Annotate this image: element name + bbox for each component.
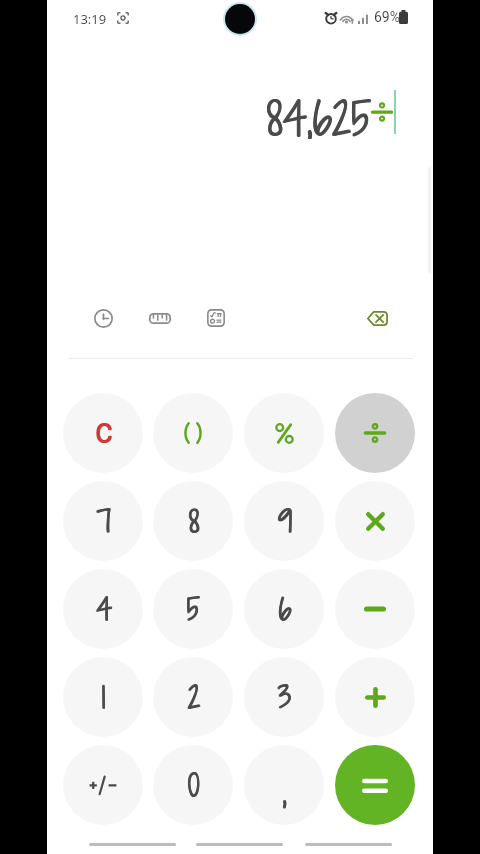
staticText: ,	[283, 771, 287, 815]
staticText: 9	[278, 501, 293, 543]
staticText: 3	[278, 677, 292, 719]
staticText: 5	[186, 588, 200, 630]
staticText: 4	[96, 588, 113, 630]
button[interactable]: Zero	[153, 745, 233, 825]
staticText: 13:19	[73, 10, 107, 28]
staticText: 9	[278, 500, 293, 542]
button[interactable]: Minus	[335, 569, 415, 649]
staticText: 1	[101, 676, 105, 718]
staticText: 84,625	[266, 87, 371, 139]
staticText: 8	[188, 500, 199, 542]
staticText: C	[96, 418, 113, 448]
staticText: 3	[277, 676, 291, 718]
button[interactable]: Equals	[335, 745, 415, 825]
staticText: 0	[188, 765, 200, 807]
button[interactable]: Unit converter	[138, 296, 182, 340]
button[interactable]: Multiply	[335, 481, 415, 561]
staticText: 5	[187, 588, 201, 630]
staticText: C	[95, 418, 112, 448]
button[interactable]: Backspace	[353, 294, 401, 342]
button[interactable]: Divide	[335, 393, 415, 473]
staticText: 2	[188, 676, 201, 718]
button[interactable]: Scientific calculator	[194, 296, 238, 340]
staticText: 1	[102, 677, 106, 719]
staticText: 8	[189, 501, 200, 543]
button[interactable]: One	[63, 657, 143, 737]
button[interactable]: Clear	[63, 393, 143, 473]
staticText: 5	[186, 589, 200, 631]
button[interactable]: Five	[153, 569, 233, 649]
staticText: 4	[95, 589, 112, 631]
staticText: C	[95, 419, 112, 449]
staticText: 3	[277, 677, 291, 719]
button[interactable]: Plus	[335, 657, 415, 737]
staticText: 6	[278, 589, 291, 631]
staticText: 6	[279, 588, 292, 630]
staticText: C	[96, 419, 113, 449]
staticText: 7	[96, 501, 111, 543]
staticText: ,	[282, 771, 286, 815]
button[interactable]: Seven	[63, 481, 143, 561]
button[interactable]: Six	[244, 569, 324, 649]
button[interactable]: Nine	[244, 481, 324, 561]
button[interactable]: Decimal separator	[244, 745, 324, 825]
staticText: 6	[279, 589, 292, 631]
staticText: 2	[188, 677, 201, 719]
staticText: 9	[277, 500, 292, 542]
button[interactable]: Four	[63, 569, 143, 649]
staticText: 3	[278, 676, 292, 718]
staticText: 4	[95, 588, 112, 630]
staticText: 2	[187, 676, 200, 718]
staticText: 9	[277, 501, 292, 543]
button[interactable]: Two	[153, 657, 233, 737]
staticText: 1	[102, 676, 106, 718]
staticText: 0	[187, 764, 199, 806]
staticText: ,	[283, 770, 287, 814]
staticText: 5	[187, 589, 201, 631]
staticText: 84,625	[267, 87, 372, 139]
staticText: 8	[189, 500, 200, 542]
staticText: 7	[97, 500, 112, 542]
staticText: 84,625	[267, 86, 372, 138]
staticText: 69%	[374, 9, 400, 25]
staticText: 6	[278, 588, 291, 630]
button[interactable]: Percent	[244, 393, 324, 473]
staticText: 84,625	[266, 86, 371, 138]
button[interactable]: Three	[244, 657, 324, 737]
staticText: 7	[96, 500, 111, 542]
staticText: 8	[188, 501, 199, 543]
staticText: 1	[101, 677, 105, 719]
staticText: ,	[282, 770, 286, 814]
staticText: 0	[188, 764, 200, 806]
button[interactable]: Parentheses	[153, 393, 233, 473]
staticText: 4	[96, 589, 113, 631]
button[interactable]: Eight	[153, 481, 233, 561]
button[interactable]: History	[81, 296, 125, 340]
button[interactable]: Plus minus	[63, 745, 143, 825]
staticText: 7	[97, 501, 112, 543]
staticText: 2	[187, 677, 200, 719]
staticText: 0	[187, 765, 199, 807]
